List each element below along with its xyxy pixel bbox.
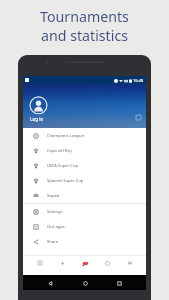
staticText: Squad — [47, 193, 60, 199]
staticText: and statistics — [41, 26, 128, 45]
button[interactable]: Refresh — [101, 257, 113, 269]
staticText: Log in — [30, 116, 44, 122]
button[interactable]: More — [124, 257, 136, 269]
button[interactable]: Spanish Super Cup — [23, 173, 146, 188]
button[interactable]: Home — [78, 276, 92, 290]
button[interactable]: Squad — [23, 188, 146, 203]
staticText: 16:48 — [133, 78, 144, 83]
button[interactable]: Back — [43, 276, 57, 290]
other: Account — [136, 115, 141, 120]
staticText: Tournaments — [40, 7, 129, 26]
staticText: UEFA Super Cup — [47, 163, 78, 169]
button[interactable]: Copa del Rey — [23, 143, 146, 158]
staticText: Spanish Super Cup — [47, 178, 84, 184]
button[interactable]: UEFA Super Cup — [23, 158, 146, 173]
button[interactable]: Our apps — [23, 219, 146, 234]
button[interactable]: Settings — [23, 204, 146, 219]
staticText: Champions League — [47, 133, 84, 139]
staticText: Our apps — [47, 224, 65, 230]
button[interactable]: Share — [23, 234, 146, 249]
staticText: Copa del Rey — [47, 148, 72, 154]
button[interactable]: Recents — [112, 276, 126, 290]
button[interactable]: Flash — [56, 257, 68, 269]
button[interactable]: Champions League — [23, 128, 146, 143]
button[interactable]: Messages — [79, 257, 91, 269]
staticText: Settings — [47, 209, 63, 215]
button[interactable]: Document — [34, 257, 46, 269]
staticText: Share — [47, 239, 58, 245]
